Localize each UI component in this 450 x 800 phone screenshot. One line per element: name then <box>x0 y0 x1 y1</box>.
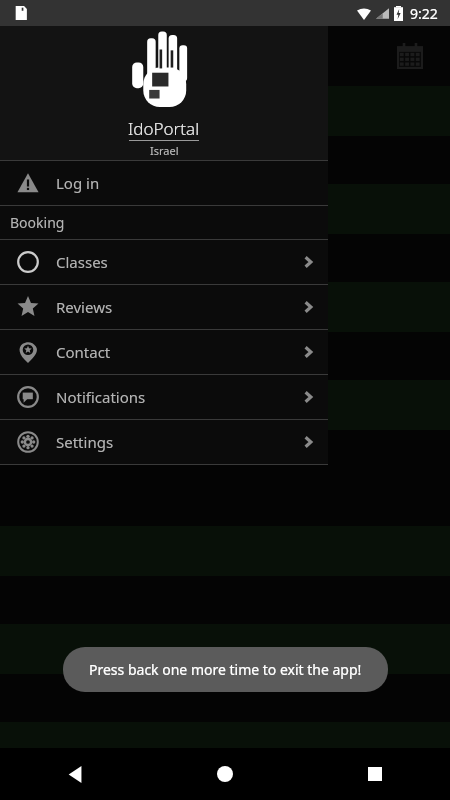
staticText: Reviews <box>56 297 113 317</box>
button[interactable]: Contact <box>0 330 328 374</box>
button[interactable]: Log in <box>0 161 328 205</box>
staticText: Log in <box>56 173 100 193</box>
button[interactable] <box>0 282 450 332</box>
staticText: Notifications <box>56 387 146 407</box>
button[interactable] <box>0 234 450 282</box>
staticText: Classes <box>56 252 108 272</box>
staticText: 9:22 <box>410 4 438 23</box>
button[interactable]: Settings <box>0 420 328 464</box>
button[interactable] <box>0 86 450 136</box>
button[interactable]: Calendar <box>388 34 432 78</box>
button[interactable] <box>0 674 450 722</box>
button[interactable]: Back <box>51 750 99 798</box>
staticText: IdoPortal <box>128 117 200 140</box>
button[interactable] <box>0 430 450 526</box>
button[interactable] <box>0 184 450 234</box>
button[interactable]: Reviews <box>0 285 328 329</box>
button[interactable]: Recents <box>351 750 399 798</box>
staticText: Booking <box>10 213 65 232</box>
button[interactable] <box>0 624 450 674</box>
button[interactable]: Classes <box>0 240 328 284</box>
staticText: Israel <box>150 143 179 158</box>
button[interactable]: Notifications <box>0 375 328 419</box>
button[interactable]: Home <box>201 750 249 798</box>
button[interactable] <box>0 332 450 380</box>
staticText: Press back one more time to exit the app… <box>89 660 362 679</box>
button[interactable] <box>0 136 450 184</box>
button[interactable] <box>0 772 450 800</box>
button[interactable] <box>0 380 450 430</box>
button[interactable] <box>0 722 450 772</box>
staticText: Settings <box>56 432 114 452</box>
staticText: Contact <box>56 342 111 362</box>
